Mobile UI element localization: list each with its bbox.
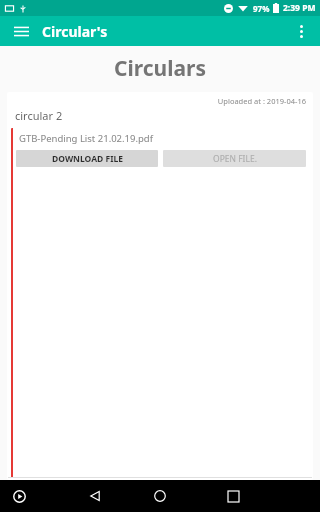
button[interactable]: Recent apps	[218, 481, 248, 511]
button[interactable]: Uploaded at : 2019-04-16	[7, 92, 313, 480]
button[interactable]: DOWNLOAD FILE	[16, 150, 158, 167]
staticText: circular 2	[15, 108, 63, 123]
staticText: Circulars	[0, 54, 320, 83]
staticText: 97%	[253, 3, 270, 14]
staticText: OPEN FILE.	[213, 153, 257, 165]
button[interactable]: More options	[288, 18, 314, 44]
staticText: Uploaded at : 2019-04-16	[8, 96, 306, 106]
button[interactable]: Open navigation drawer	[8, 18, 34, 44]
staticText: Circular's	[42, 22, 108, 41]
staticText: 2:39 PM	[283, 2, 316, 14]
button[interactable]: Back	[80, 481, 110, 511]
button[interactable]: OPEN FILE.	[163, 150, 306, 167]
button[interactable]: Home	[145, 481, 175, 511]
button[interactable]: Screen recorder	[6, 483, 32, 509]
staticText: GTB-Pending List 21.02.19.pdf	[19, 132, 153, 145]
staticText: DOWNLOAD FILE	[52, 153, 123, 165]
